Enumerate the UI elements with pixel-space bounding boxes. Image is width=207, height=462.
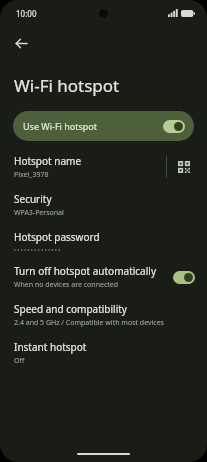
staticText: Off: [14, 356, 25, 366]
staticText: Speed and compatibility: [14, 302, 127, 316]
staticText: Turn off hotspot automatically: [14, 264, 156, 278]
button[interactable]: Use Wi-Fi hotspot: [13, 111, 194, 141]
button[interactable]: Speed and compatibility: [0, 302, 207, 328]
staticText: Pixel_3978: [14, 170, 49, 180]
staticText: When no devices are connected: [14, 280, 119, 290]
staticText: Use Wi-Fi hotspot: [23, 120, 98, 132]
staticText: Instant hotspot: [14, 340, 87, 354]
button[interactable]: Security: [0, 192, 207, 218]
staticText: WPA3-Personal: [14, 208, 64, 218]
staticText: 2.4 and 5 GHz / Compatible with most dev…: [14, 318, 164, 328]
staticText: Hotspot password: [14, 230, 100, 244]
button[interactable]: Hotspot name: [0, 154, 207, 180]
staticText: 10:00: [16, 8, 37, 19]
staticText: Hotspot name: [14, 154, 82, 168]
other: Toggle: [163, 120, 185, 133]
button[interactable]: Instant hotspot: [0, 340, 207, 366]
other: Toggle: [173, 271, 195, 284]
button[interactable]: Turn off hotspot automatically: [0, 264, 207, 290]
button[interactable]: Hotspot password: [0, 230, 207, 252]
button[interactable]: Share hotspot QR code: [171, 154, 197, 180]
staticText: Security: [14, 192, 52, 206]
staticText: Wi-Fi hotspot: [14, 74, 120, 97]
button[interactable]: Back: [6, 28, 36, 58]
